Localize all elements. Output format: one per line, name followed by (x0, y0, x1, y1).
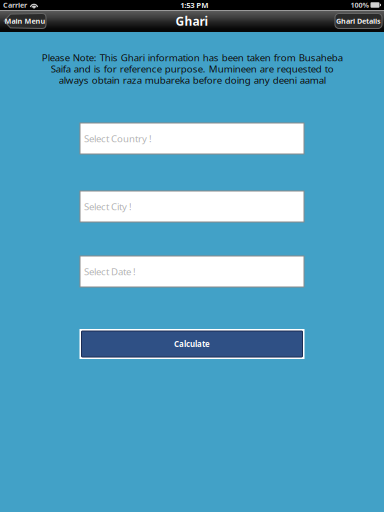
staticText: Select Country ! (84, 132, 152, 145)
staticText: Select City ! (84, 200, 132, 213)
button[interactable]: Select Date ! (80, 256, 304, 287)
staticText: Please Note: This Ghari information has … (41, 51, 342, 86)
button[interactable]: Main Menu (4, 13, 46, 28)
staticText: Main Menu (4, 16, 45, 26)
button[interactable]: Select Country ! (80, 123, 304, 154)
button[interactable]: Ghari Details (335, 13, 382, 28)
staticText: 100% (350, 0, 368, 10)
staticText: Carrier (3, 0, 27, 10)
staticText: Select Date ! (84, 265, 136, 278)
staticText: Calculate (174, 339, 210, 349)
button[interactable]: Calculate (79, 329, 304, 359)
staticText: 1:53 PM (180, 0, 208, 10)
staticText: Ghari (175, 13, 208, 29)
button[interactable]: Select City ! (80, 191, 304, 222)
staticText: Ghari Details (336, 16, 381, 26)
